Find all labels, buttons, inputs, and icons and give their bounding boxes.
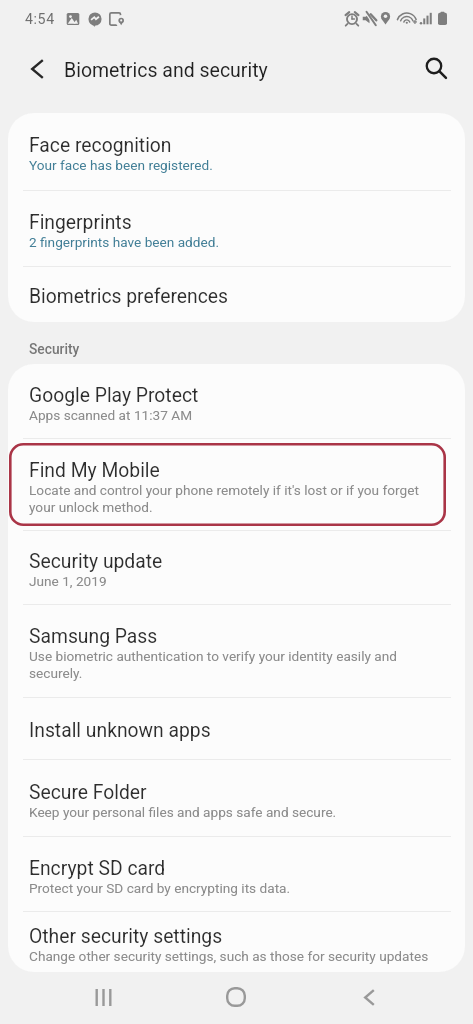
button[interactable]: Find My Mobile (8, 439, 465, 530)
staticText: Fingerprints (29, 211, 132, 234)
staticText: 2 fingerprints have been added. (29, 234, 220, 250)
staticText: Other security settings (29, 925, 223, 948)
button[interactable]: Other security settings (8, 912, 465, 972)
button[interactable]: Recent apps (79, 973, 127, 1021)
staticText: Your face has been registered. (29, 157, 213, 173)
staticText: Change other security settings, such as … (29, 948, 429, 964)
button[interactable]: Back (345, 973, 393, 1021)
staticText: 4:54 (25, 11, 55, 28)
button[interactable]: Security update (8, 531, 465, 604)
button[interactable]: Install unknown apps (8, 698, 465, 759)
staticText: Locate and control your phone remotely i… (29, 482, 437, 515)
button[interactable]: Secure Folder (8, 760, 465, 836)
staticText: Keep your personal files and apps safe a… (29, 804, 337, 820)
button[interactable]: Encrypt SD card (8, 837, 465, 911)
staticText: Biometrics and security (64, 59, 268, 82)
staticText: Security (29, 341, 80, 357)
staticText: Install unknown apps (29, 719, 211, 742)
staticText: Samsung Pass (29, 625, 158, 648)
staticText: Use biometric authentication to verify y… (29, 648, 437, 681)
button[interactable]: Biometrics preferences (8, 267, 465, 322)
staticText: Apps scanned at 11:37 AM (29, 407, 193, 423)
button[interactable]: Search (418, 50, 454, 86)
button[interactable]: Samsung Pass (8, 605, 465, 697)
button[interactable]: Navigate up (19, 51, 55, 87)
staticText: Secure Folder (29, 781, 147, 804)
staticText: Biometrics preferences (29, 285, 228, 308)
button[interactable]: Fingerprints (8, 191, 465, 266)
button[interactable]: Face recognition (8, 113, 465, 190)
button[interactable]: Google Play Protect (8, 364, 465, 438)
staticText: Find My Mobile (29, 459, 160, 482)
staticText: Face recognition (29, 134, 172, 157)
staticText: Encrypt SD card (29, 857, 166, 880)
staticText: Google Play Protect (29, 384, 199, 407)
staticText: Security update (29, 550, 163, 573)
staticText: Protect your SD card by encrypting its d… (29, 880, 291, 896)
staticText: June 1, 2019 (29, 573, 107, 589)
button[interactable]: Home (212, 973, 260, 1021)
